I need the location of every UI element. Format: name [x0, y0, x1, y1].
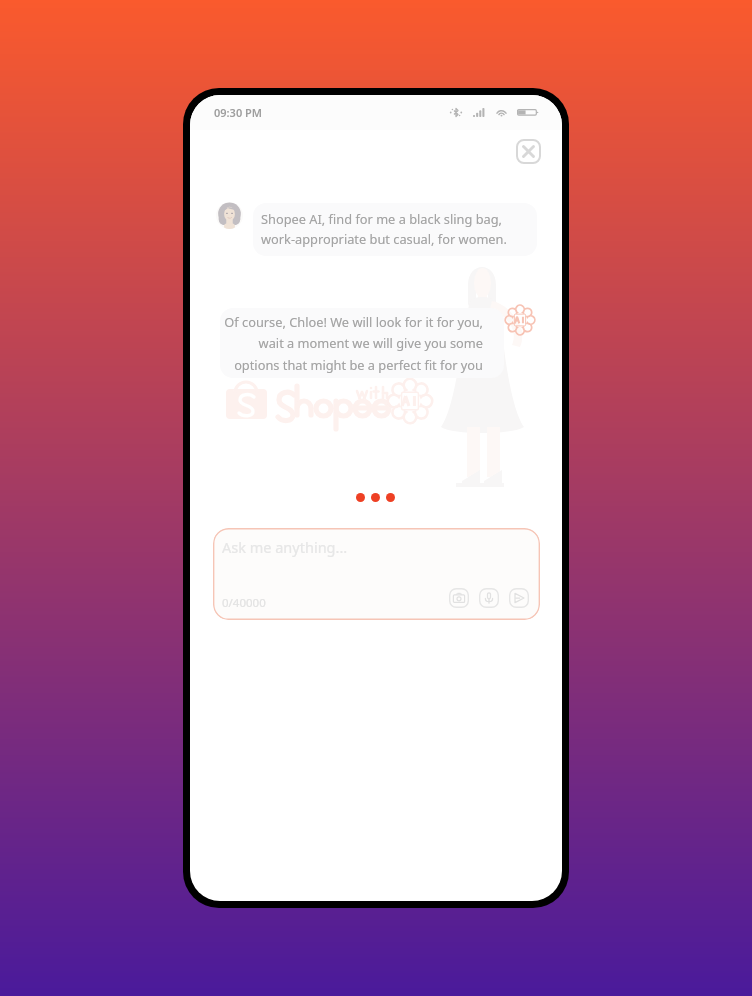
button[interactable]: Send	[509, 588, 529, 608]
button[interactable]: Of course, Chloe! We will look for it fo…	[220, 308, 504, 378]
button[interactable]: Close	[516, 139, 541, 164]
button[interactable]: Ask me anything...	[213, 528, 540, 620]
staticText: Shopee AI, find for me a black sling bag…	[261, 210, 507, 248]
button[interactable]: Shopee AI, find for me a black sling bag…	[253, 203, 537, 256]
staticText: 09:30 PM	[214, 105, 263, 120]
button[interactable]: Voice input	[479, 588, 499, 608]
button[interactable]: Camera	[449, 588, 469, 608]
staticText: Ask me anything...	[222, 537, 348, 557]
staticText: Of course, Chloe! We will look for it fo…	[224, 313, 483, 374]
staticText: 0/40000	[222, 595, 266, 611]
